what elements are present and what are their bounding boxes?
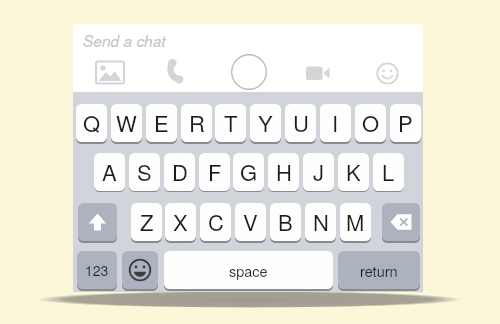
- button[interactable]: W: [111, 104, 142, 142]
- button[interactable]: H: [268, 153, 299, 191]
- staticText: G: [240, 156, 258, 188]
- button[interactable]: M: [340, 203, 371, 241]
- button[interactable]: return: [338, 251, 420, 289]
- staticText: F: [208, 156, 222, 188]
- staticText: W: [116, 107, 137, 139]
- staticText: T: [224, 107, 238, 139]
- button[interactable]: V: [235, 203, 266, 241]
- staticText: E: [154, 107, 169, 139]
- staticText: L: [382, 156, 395, 188]
- button[interactable]: [78, 203, 117, 241]
- button[interactable]: N: [305, 203, 336, 241]
- staticText: J: [313, 156, 325, 188]
- staticText: K: [346, 156, 361, 188]
- button[interactable]: E: [146, 104, 177, 142]
- staticText: Z: [140, 206, 154, 238]
- button[interactable]: Y: [250, 104, 281, 142]
- button[interactable]: [382, 203, 420, 241]
- staticText: 123: [85, 260, 109, 280]
- button[interactable]: P: [390, 104, 421, 142]
- button[interactable]: [94, 57, 126, 87]
- button[interactable]: G: [233, 153, 264, 191]
- staticText: H: [276, 156, 292, 188]
- button[interactable]: L: [373, 153, 404, 191]
- staticText: M: [346, 206, 365, 238]
- button[interactable]: A: [94, 153, 125, 191]
- button[interactable]: Q: [76, 104, 107, 142]
- staticText: Send a chat: [83, 30, 166, 52]
- staticText: C: [208, 206, 224, 238]
- button[interactable]: 123: [77, 251, 117, 289]
- staticText: O: [362, 107, 380, 139]
- button[interactable]: D: [164, 153, 195, 191]
- button[interactable]: [230, 53, 268, 91]
- staticText: N: [313, 206, 329, 238]
- button[interactable]: C: [200, 203, 231, 241]
- staticText: S: [137, 156, 152, 188]
- staticText: P: [398, 107, 413, 139]
- button[interactable]: I: [320, 104, 351, 142]
- button[interactable]: R: [181, 104, 212, 142]
- button[interactable]: Z: [131, 203, 162, 241]
- staticText: A: [102, 156, 117, 188]
- button[interactable]: [373, 59, 402, 88]
- button[interactable]: B: [270, 203, 301, 241]
- button[interactable]: J: [303, 153, 334, 191]
- staticText: R: [189, 107, 205, 139]
- button[interactable]: [162, 56, 192, 86]
- staticText: V: [243, 206, 258, 238]
- staticText: U: [293, 107, 309, 139]
- button[interactable]: F: [199, 153, 230, 191]
- button[interactable]: [122, 251, 158, 289]
- staticText: X: [173, 206, 188, 238]
- staticText: B: [278, 206, 293, 238]
- button[interactable]: S: [129, 153, 160, 191]
- staticText: return: [360, 260, 398, 281]
- staticText: D: [172, 156, 188, 188]
- button[interactable]: X: [165, 203, 196, 241]
- button[interactable]: K: [338, 153, 369, 191]
- button[interactable]: space: [164, 251, 333, 289]
- button[interactable]: U: [285, 104, 316, 142]
- button[interactable]: O: [355, 104, 386, 142]
- button[interactable]: T: [215, 104, 246, 142]
- button[interactable]: Send a chat: [73, 24, 423, 55]
- staticText: space: [229, 260, 268, 281]
- button[interactable]: [303, 59, 333, 85]
- staticText: I: [332, 107, 339, 139]
- staticText: Y: [258, 107, 273, 139]
- staticText: Q: [83, 107, 101, 139]
